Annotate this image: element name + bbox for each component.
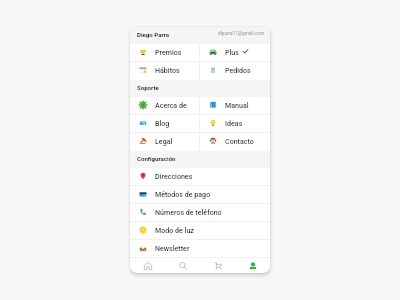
staticText: Contacto [225, 137, 254, 145]
button[interactable]: Manual [200, 97, 270, 115]
button[interactable]: Contacto [200, 133, 270, 151]
button[interactable]: Plus [200, 44, 270, 62]
button[interactable]: Direcciones [130, 168, 270, 186]
staticText: Soporte [137, 84, 159, 91]
button[interactable]: Blog [130, 115, 199, 133]
staticText: Manual [225, 101, 249, 109]
button[interactable]: Legal [130, 133, 199, 151]
button[interactable]: Ideas [200, 115, 270, 133]
button[interactable]: Acerca de [130, 97, 199, 115]
staticText: Diego Parra [137, 31, 170, 38]
staticText: Ideas [225, 119, 243, 127]
staticText: Configuración [137, 155, 176, 162]
button[interactable]: Hábitos [130, 62, 199, 80]
staticText: Métodos de pago [155, 190, 211, 198]
button[interactable]: Home [130, 258, 165, 273]
staticText: dlparra11@gmail.com [218, 31, 265, 37]
button[interactable]: Profile [235, 258, 270, 273]
button[interactable]: Pedidos [200, 62, 270, 80]
staticText: Plus [225, 48, 239, 56]
staticText: Newsletter [155, 244, 190, 252]
button[interactable]: Modo de luz [130, 222, 270, 240]
button[interactable]: Métodos de pago [130, 186, 270, 204]
staticText: Números de teléfono [155, 208, 222, 216]
button[interactable]: Cart [200, 258, 235, 273]
button[interactable]: Números de teléfono [130, 204, 270, 222]
staticText: Legal [155, 137, 173, 145]
staticText: Pedidos [225, 66, 251, 74]
button[interactable]: Newsletter [130, 240, 270, 258]
staticText: Hábitos [155, 66, 180, 74]
button[interactable]: Premios [130, 44, 199, 62]
staticText: Acerca de [155, 101, 187, 109]
staticText: Blog [155, 119, 170, 127]
button[interactable]: Search [165, 258, 200, 273]
staticText: Modo de luz [155, 226, 194, 234]
staticText: Premios [155, 48, 182, 56]
staticText: Direcciones [155, 172, 193, 180]
